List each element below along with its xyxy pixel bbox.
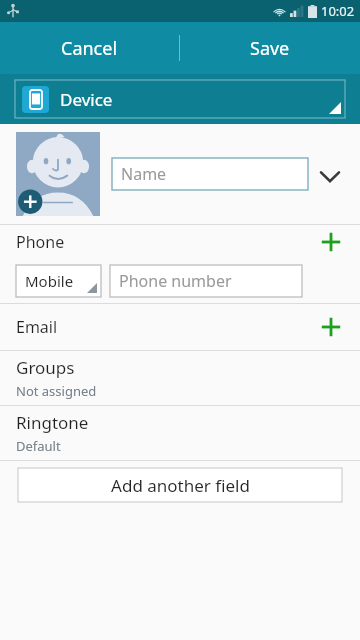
button[interactable]: Add Email	[315, 311, 347, 343]
button[interactable]: Save	[180, 22, 360, 74]
staticText: Email	[16, 316, 58, 338]
staticText: Phone	[16, 231, 65, 253]
button[interactable]: Email	[0, 304, 360, 350]
button[interactable]: Phone number	[110, 265, 302, 297]
staticText: Not assigned	[16, 382, 97, 400]
button[interactable]: Add another field	[18, 468, 342, 502]
button[interactable]: Add contact photo	[16, 132, 100, 216]
staticText: Device	[60, 88, 113, 111]
staticText: Save	[250, 36, 290, 61]
button[interactable]: Groups	[0, 351, 360, 405]
staticText: 10:02	[321, 2, 355, 20]
button[interactable]: Device	[15, 80, 345, 118]
button[interactable]: Add phone number	[315, 226, 347, 258]
button[interactable]: Name	[112, 158, 308, 190]
staticText: Name	[121, 163, 167, 185]
staticText: Add another field	[111, 474, 250, 497]
button[interactable]: Ringtone	[0, 406, 360, 460]
button[interactable]: Mobile	[16, 265, 101, 297]
staticText: Cancel	[61, 36, 118, 61]
staticText: Default	[16, 437, 61, 455]
staticText: Groups	[16, 356, 75, 379]
staticText: Mobile	[25, 271, 74, 291]
button[interactable]: Cancel	[0, 22, 179, 74]
button[interactable]: Expand name fields	[316, 162, 344, 190]
staticText: Phone number	[119, 270, 232, 292]
staticText: Ringtone	[16, 411, 89, 434]
